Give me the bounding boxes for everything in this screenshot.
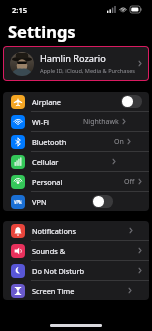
button[interactable]: Bluetooth	[3, 132, 149, 151]
button[interactable]: Notifications	[3, 221, 149, 240]
staticText: Airplane Mode	[32, 97, 76, 107]
button[interactable]: Personal Hotspot	[3, 172, 149, 191]
staticText: Hamlin Rozario	[40, 52, 106, 65]
staticText: Notifications	[32, 226, 76, 236]
staticText: Nighthawk	[83, 117, 119, 127]
staticText: Sounds & Haptics	[32, 246, 85, 256]
staticText: Apple ID, iCloud, Media & Purchases	[40, 67, 135, 75]
staticText: Personal Hotspot	[32, 177, 78, 187]
staticText: 2:15	[12, 5, 28, 15]
button[interactable]: Sounds & Haptics	[3, 241, 149, 260]
staticText: Off	[124, 177, 135, 187]
staticText: Screen Time	[32, 286, 75, 296]
button[interactable]	[92, 195, 113, 208]
staticText: VPN	[32, 197, 47, 207]
button[interactable]: Cellular	[3, 152, 149, 171]
button[interactable]: Hamlin Rozario	[4, 47, 148, 80]
button[interactable]	[121, 95, 142, 108]
staticText: Bluetooth	[32, 137, 67, 147]
button[interactable]: Wi-Fi	[3, 112, 149, 131]
staticText: Settings	[8, 20, 76, 42]
staticText: Wi-Fi	[32, 117, 49, 127]
staticText: Cellular	[32, 157, 59, 167]
staticText: On	[114, 137, 124, 147]
button[interactable]: Airplane Mode	[3, 92, 149, 111]
button[interactable]: Do Not Disturb	[3, 261, 149, 280]
button[interactable]: Screen Time	[3, 281, 149, 300]
button[interactable]: VPN	[3, 192, 149, 211]
staticText: Do Not Disturb	[32, 266, 85, 276]
